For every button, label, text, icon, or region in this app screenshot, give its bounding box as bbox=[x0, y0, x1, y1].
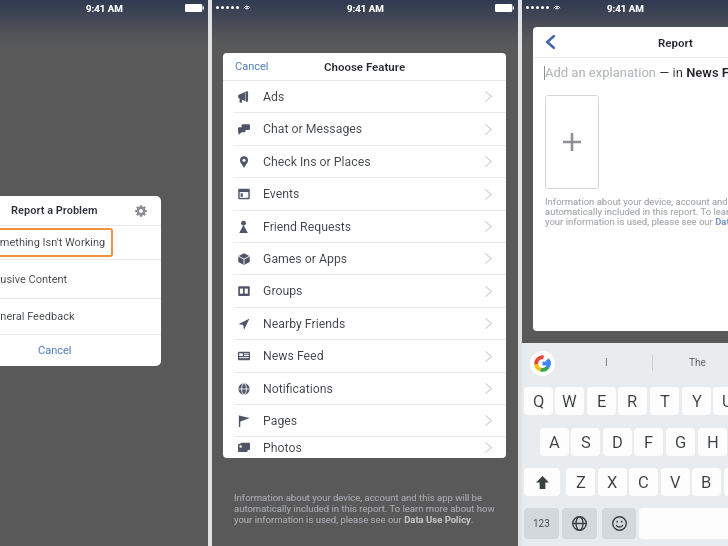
button[interactable]: Chat or Messages bbox=[223, 113, 506, 145]
staticText: Information about your device, account a… bbox=[234, 492, 499, 525]
button[interactable]: Something Isn't Working bbox=[0, 226, 161, 259]
staticText: Add an explanation — in News Feed bbox=[545, 65, 728, 80]
button[interactable]: Z bbox=[566, 468, 595, 496]
button[interactable]: Add a photo bbox=[545, 95, 599, 189]
staticText: Something Isn't Working bbox=[0, 236, 106, 249]
button[interactable]: Pages bbox=[223, 405, 506, 436]
staticText: 9:41 AM bbox=[86, 3, 123, 14]
staticText: Nearby Friends bbox=[263, 317, 346, 331]
button[interactable]: Emoji bbox=[602, 508, 636, 539]
staticText: D bbox=[612, 433, 623, 452]
staticText: Abusive Content bbox=[0, 273, 68, 286]
button[interactable]: D bbox=[603, 428, 632, 456]
staticText: I bbox=[605, 357, 608, 369]
staticText: Y bbox=[692, 392, 702, 411]
button[interactable]: Check Ins or Places bbox=[223, 146, 506, 177]
button[interactable]: T bbox=[650, 387, 679, 415]
staticText: Games or Apps bbox=[263, 252, 348, 266]
button[interactable]: S bbox=[571, 428, 600, 456]
staticText: Ads bbox=[263, 90, 285, 104]
button[interactable]: Back bbox=[538, 30, 562, 54]
button[interactable]: E bbox=[587, 387, 616, 415]
staticText: General Feedback bbox=[0, 310, 75, 323]
staticText: H bbox=[707, 433, 719, 452]
staticText: Groups bbox=[263, 284, 303, 298]
staticText: Cancel bbox=[38, 344, 72, 357]
button[interactable]: H bbox=[698, 428, 727, 456]
staticText: 123 bbox=[533, 518, 550, 530]
button[interactable]: X bbox=[598, 468, 627, 496]
button[interactable]: Events bbox=[223, 178, 506, 210]
button[interactable]: Games or Apps bbox=[223, 243, 506, 274]
button[interactable]: Shift bbox=[524, 468, 560, 496]
button[interactable]: 123 bbox=[524, 508, 559, 539]
button[interactable]: W bbox=[555, 387, 584, 415]
staticText: Report a Problem bbox=[11, 204, 98, 217]
staticText: Notifications bbox=[263, 382, 333, 396]
staticText: 9:41 AM bbox=[347, 3, 384, 14]
staticText: Events bbox=[263, 187, 300, 201]
staticText: F bbox=[644, 433, 654, 452]
button[interactable]: Abusive Content bbox=[0, 260, 161, 298]
staticText: Pages bbox=[263, 414, 298, 428]
staticText: News Feed bbox=[263, 349, 324, 363]
staticText: A bbox=[549, 433, 560, 452]
staticText: S bbox=[581, 433, 591, 452]
button[interactable]: Nearby Friends bbox=[223, 308, 506, 339]
button[interactable]: Settings bbox=[131, 201, 151, 221]
staticText: Photos bbox=[263, 441, 302, 455]
button[interactable]: Photos bbox=[223, 437, 506, 458]
staticText: R bbox=[627, 392, 638, 411]
button[interactable]: B bbox=[692, 468, 721, 496]
staticText: V bbox=[670, 473, 681, 492]
button[interactable]: C bbox=[629, 468, 658, 496]
button[interactable]: G bbox=[666, 428, 695, 456]
staticText: The bbox=[689, 357, 706, 369]
staticText: 9:41 AM bbox=[607, 3, 644, 14]
button[interactable]: N bbox=[724, 468, 728, 496]
button[interactable]: Friend Requests bbox=[223, 211, 506, 242]
staticText: Z bbox=[576, 473, 586, 492]
button[interactable]: Change language bbox=[562, 508, 597, 539]
button[interactable]: Q bbox=[524, 387, 553, 415]
button[interactable]: A bbox=[540, 428, 569, 456]
button[interactable]: Notifications bbox=[223, 373, 506, 404]
staticText: Cancel bbox=[235, 60, 269, 73]
button[interactable]: U bbox=[713, 387, 728, 415]
button[interactable]: Y bbox=[682, 387, 711, 415]
button[interactable]: News Feed bbox=[223, 340, 506, 372]
button[interactable]: General Feedback bbox=[0, 299, 161, 334]
staticText: W bbox=[562, 392, 577, 411]
button[interactable]: R bbox=[618, 387, 647, 415]
staticText: U bbox=[722, 392, 728, 411]
staticText: T bbox=[660, 392, 670, 411]
staticText: G bbox=[675, 433, 687, 452]
staticText: Friend Requests bbox=[263, 220, 352, 234]
button[interactable]: Ads bbox=[223, 81, 506, 112]
staticText: Information about your device, account a… bbox=[545, 196, 728, 227]
staticText: X bbox=[607, 473, 618, 492]
button[interactable]: Cancel bbox=[223, 53, 281, 80]
staticText: Chat or Messages bbox=[263, 122, 363, 136]
button[interactable]: V bbox=[661, 468, 690, 496]
staticText: Choose Feature bbox=[324, 60, 406, 73]
button[interactable]: F bbox=[634, 428, 663, 456]
staticText: Report bbox=[658, 36, 693, 49]
staticText: C bbox=[638, 473, 649, 492]
button[interactable]: Cancel bbox=[0, 335, 161, 366]
staticText: E bbox=[597, 392, 607, 411]
staticText: Check Ins or Places bbox=[263, 155, 371, 169]
staticText: B bbox=[701, 473, 712, 492]
staticText: Q bbox=[533, 392, 545, 411]
button[interactable]: Groups bbox=[223, 275, 506, 307]
